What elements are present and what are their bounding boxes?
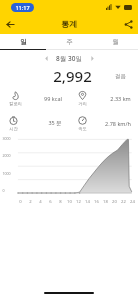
button[interactable]: Back — [0, 14, 20, 34]
staticText: 속도 — [78, 126, 87, 131]
staticText: 24 — [130, 199, 135, 205]
staticText: 99 kcal — [44, 95, 62, 102]
button[interactable]: 칼로리 — [0, 89, 69, 107]
staticText: 10 — [67, 199, 72, 205]
staticText: 거리 — [78, 101, 87, 106]
staticText: 22 — [121, 199, 126, 205]
staticText: 4 — [39, 199, 42, 205]
button[interactable]: Previous day — [40, 52, 52, 64]
staticText: 8 — [59, 199, 62, 205]
staticText: 2,992 — [53, 66, 92, 86]
staticText: 35 분 — [48, 119, 62, 127]
staticText: 16 — [94, 199, 99, 205]
staticText: 18 — [103, 199, 108, 205]
button[interactable]: 속도 — [69, 114, 138, 132]
button[interactable]: 월 — [92, 34, 138, 49]
staticText: 3000 — [2, 136, 11, 141]
staticText: 2.33 km — [110, 95, 131, 102]
staticText: 1000 — [2, 171, 11, 176]
button[interactable]: 거리 — [69, 89, 138, 107]
staticText: 0 — [19, 199, 22, 205]
staticText: 0 — [2, 188, 5, 193]
button[interactable]: 시간 — [0, 114, 69, 132]
staticText: 12 — [76, 199, 81, 205]
staticText: 2.78 km/h — [105, 120, 131, 127]
staticText: 14 — [85, 199, 90, 205]
staticText: 20 — [112, 199, 117, 205]
staticText: 칼로리 — [9, 101, 22, 106]
button[interactable]: Share — [118, 14, 138, 34]
staticText: 시간 — [9, 126, 18, 131]
staticText: 11:17 — [15, 4, 30, 11]
staticText: 2000 — [2, 153, 11, 158]
button[interactable]: Next day — [86, 52, 98, 64]
staticText: 월 — [112, 38, 119, 46]
button[interactable]: 일 — [0, 34, 46, 49]
button[interactable]: 주 — [46, 34, 92, 49]
staticText: 6 — [49, 199, 52, 205]
staticText: 8월 30일 — [56, 54, 82, 63]
staticText: 통계 — [61, 19, 77, 29]
staticText: 주 — [66, 38, 73, 46]
staticText: 일 — [20, 38, 27, 46]
staticText: 2 — [29, 199, 32, 205]
staticText: 걸음 — [115, 73, 126, 80]
